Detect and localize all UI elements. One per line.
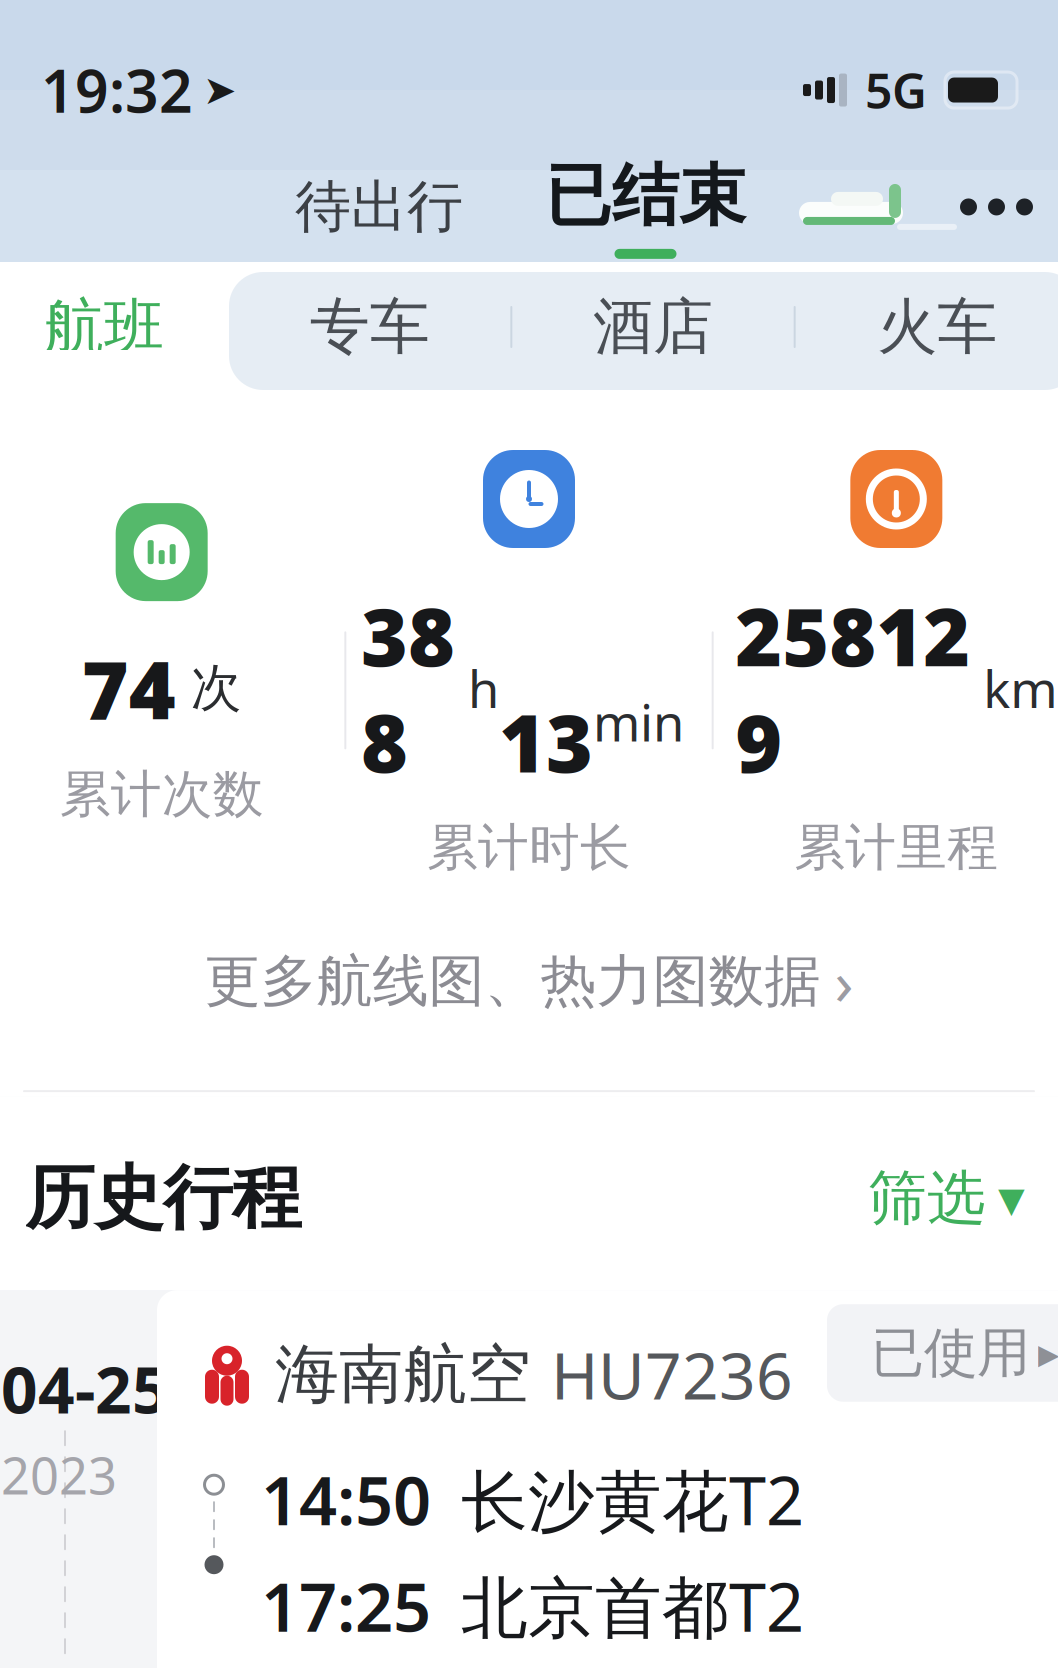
button[interactable]: 已结束 xyxy=(545,155,746,259)
staticText: 258129 xyxy=(735,582,970,794)
staticText: 海南航空 xyxy=(275,1335,531,1414)
button[interactable]: 筛选 xyxy=(860,1152,1033,1244)
button[interactable]: 专车 xyxy=(229,264,510,390)
staticText: › xyxy=(834,941,853,1022)
button[interactable]: 海南航空 xyxy=(157,1290,1058,1668)
staticText: HU7236 xyxy=(551,1332,793,1417)
staticText: 历史行程 xyxy=(25,1156,301,1241)
button[interactable]: 更多 xyxy=(944,180,1049,233)
staticText: 388 xyxy=(361,582,455,794)
staticText: 北京首都T2 xyxy=(461,1562,804,1650)
staticText: 累计里程 xyxy=(794,816,998,879)
staticText: 更多航线图、热力图数据 xyxy=(204,947,820,1016)
staticText: 火车 xyxy=(877,290,997,364)
staticText: 已使用 xyxy=(871,1320,1030,1386)
staticText: 2023 xyxy=(1,1441,117,1508)
staticText: ▸ xyxy=(1038,1329,1058,1377)
staticText: 筛选 xyxy=(868,1162,986,1234)
staticText: min xyxy=(593,621,684,756)
button[interactable]: 航班 xyxy=(0,264,229,390)
staticText: 专车 xyxy=(310,290,430,364)
staticText: 19:32 xyxy=(41,51,193,129)
staticText: 长沙黄花T2 xyxy=(461,1455,804,1544)
staticText: 酒店 xyxy=(593,290,713,364)
staticText: 已结束 xyxy=(545,155,746,237)
staticText: h xyxy=(455,655,499,722)
staticText: 13 xyxy=(499,582,593,794)
button[interactable]: 酒店 xyxy=(512,264,794,390)
staticText: 04-25 xyxy=(1,1346,169,1431)
staticText: 累计次数 xyxy=(60,763,264,826)
button[interactable]: 更多航线图、热力图数据 xyxy=(184,931,873,1032)
staticText: 74 xyxy=(82,635,176,741)
button[interactable]: 待出行 xyxy=(279,165,479,249)
staticText: ▾ xyxy=(998,1168,1025,1228)
staticText: 累计时长 xyxy=(427,816,631,879)
staticText: 待出行 xyxy=(295,173,463,241)
staticText: ➤ xyxy=(203,67,237,113)
staticText: 航班 xyxy=(44,290,164,364)
staticText: 17:25 xyxy=(261,1562,431,1650)
staticText: 5G xyxy=(865,58,927,122)
staticText: km xyxy=(970,655,1057,722)
button[interactable]: 火车 xyxy=(796,264,1058,390)
staticText: 次 xyxy=(176,657,242,719)
staticText: 14:50 xyxy=(261,1455,431,1544)
